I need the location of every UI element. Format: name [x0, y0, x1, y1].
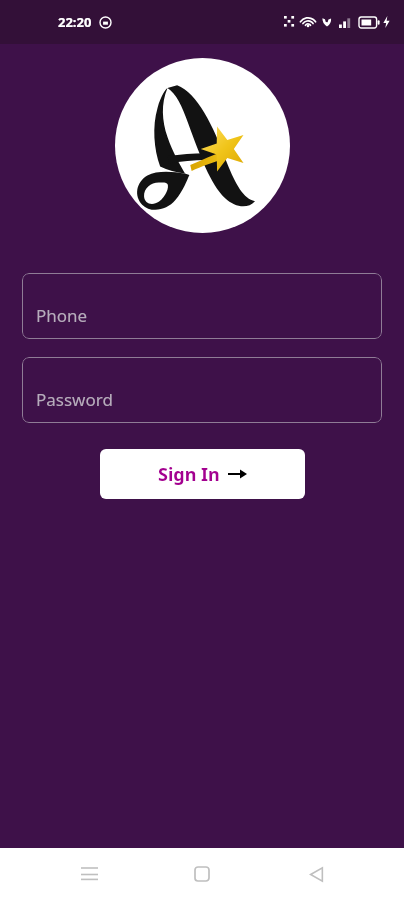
button[interactable]: Home [177, 849, 227, 899]
staticText: Sign In [158, 462, 220, 487]
staticText: 22:20 [58, 13, 92, 31]
staticText: Phone [36, 304, 88, 327]
button[interactable]: Phone [22, 273, 382, 339]
button[interactable]: Password [22, 357, 382, 423]
staticText: Password [36, 388, 113, 411]
button[interactable]: Recent apps [64, 849, 114, 899]
button[interactable]: Back [291, 849, 341, 899]
button[interactable]: Sign In [100, 449, 305, 499]
